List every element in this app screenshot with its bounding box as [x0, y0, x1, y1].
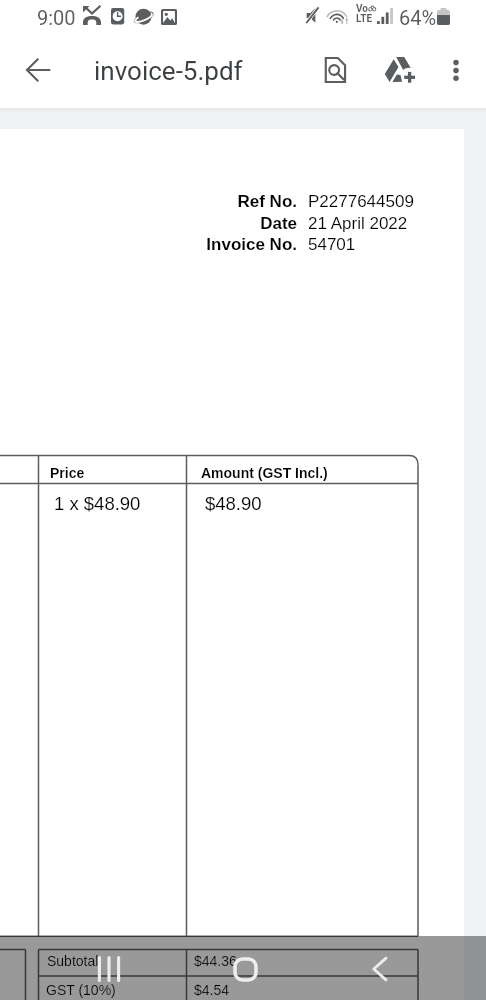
- staticText: Vo⧝: [356, 3, 377, 15]
- button[interactable]: Back: [358, 947, 402, 991]
- staticText: Ref No. Date Invoice No.: [120, 192, 297, 253]
- staticText: P2277644509 21 April 2022 54701: [308, 192, 414, 253]
- staticText: 9:00: [37, 6, 76, 29]
- button[interactable]: Find in document: [313, 48, 357, 92]
- staticText: $4.54: [194, 982, 230, 998]
- staticText: Price: [50, 465, 85, 481]
- staticText: Subtotal: [47, 953, 99, 969]
- button[interactable]: Back: [16, 48, 60, 92]
- staticText: Amount (GST Incl.): [201, 465, 328, 481]
- staticText: $48.90: [205, 493, 262, 514]
- staticText: invoice-5.pdf: [94, 56, 243, 86]
- button[interactable]: Home: [223, 947, 267, 991]
- button[interactable]: More options: [434, 48, 478, 92]
- staticText: LTE: [356, 13, 373, 25]
- button[interactable]: Add to Drive: [378, 49, 422, 93]
- staticText: 1 x $48.90: [54, 493, 141, 514]
- staticText: $44.36: [194, 953, 237, 969]
- staticText: 64%: [399, 6, 437, 29]
- button[interactable]: Recent apps: [87, 947, 131, 991]
- staticText: GST (10%): [46, 982, 116, 998]
